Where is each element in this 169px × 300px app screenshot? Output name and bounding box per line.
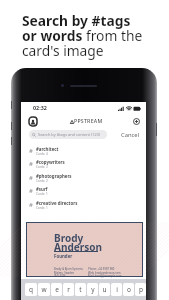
- button[interactable]: e: [51, 283, 62, 296]
- staticText: Cards: 1: [36, 206, 48, 210]
- button[interactable]: i: [111, 283, 122, 296]
- staticText: w: [41, 285, 47, 294]
- staticText: t: [79, 285, 82, 294]
- button[interactable]: #: [21, 184, 146, 198]
- staticText: 02:32: [33, 104, 47, 111]
- staticText: Search by #tags and content (123): [38, 132, 101, 137]
- button[interactable]: #: [21, 157, 146, 171]
- button[interactable]: p: [135, 283, 146, 296]
- staticText: #photographers: [36, 173, 72, 179]
- button[interactable]: #: [21, 198, 146, 212]
- button[interactable]: t: [75, 283, 86, 296]
- staticText: Cards: 2: [36, 179, 48, 183]
- staticText: #creative directors: [36, 200, 78, 206]
- staticText: #: [29, 160, 33, 168]
- staticText: Brody Anderson: [54, 231, 102, 254]
- staticText: Brody & Bjorn Systems Malmo, Sweden (54)…: [54, 267, 83, 277]
- staticText: o: [127, 285, 131, 294]
- staticText: PPSTREAM: [74, 117, 103, 124]
- button[interactable]: q: [25, 283, 37, 296]
- staticText: r: [67, 285, 70, 294]
- button[interactable]: Search by #tags and content (123): [29, 130, 107, 139]
- staticText: #: [29, 187, 33, 195]
- staticText: u: [102, 285, 107, 294]
- button[interactable]: Cancel: [120, 129, 141, 141]
- button[interactable]: #: [21, 144, 146, 158]
- staticText: Cards: 2: [36, 165, 48, 169]
- staticText: #copywriters: [36, 159, 65, 165]
- staticText: p: [139, 285, 143, 294]
- staticText: e: [55, 285, 59, 294]
- staticText: #surf: [36, 186, 48, 192]
- button[interactable]: #: [21, 171, 146, 185]
- staticText: q: [29, 285, 33, 294]
- staticText: #architect: [36, 146, 59, 152]
- staticText: #: [29, 174, 33, 182]
- staticText: Cards: 4: [36, 152, 48, 156]
- button[interactable]: y: [87, 283, 98, 296]
- staticText: Phone: +34 5987 980 Web: brodyanderson.c…: [88, 267, 122, 277]
- staticText: Founder: [54, 253, 73, 259]
- staticText: y: [91, 285, 95, 294]
- staticText: i: [116, 285, 118, 294]
- button[interactable]: u: [99, 283, 110, 296]
- staticText: #: [29, 147, 33, 155]
- button[interactable]: r: [63, 283, 74, 296]
- staticText: #: [29, 201, 33, 209]
- button[interactable]: Add: [130, 115, 142, 127]
- staticText: Search by #tags or words from the card's…: [22, 11, 143, 60]
- button[interactable]: w: [38, 283, 50, 296]
- staticText: Cancel: [121, 131, 140, 139]
- button[interactable]: o: [123, 283, 134, 296]
- button[interactable]: Profile: [27, 116, 38, 127]
- button[interactable]: Brody Anderson: [26, 222, 143, 277]
- staticText: Cards: 1: [36, 192, 48, 196]
